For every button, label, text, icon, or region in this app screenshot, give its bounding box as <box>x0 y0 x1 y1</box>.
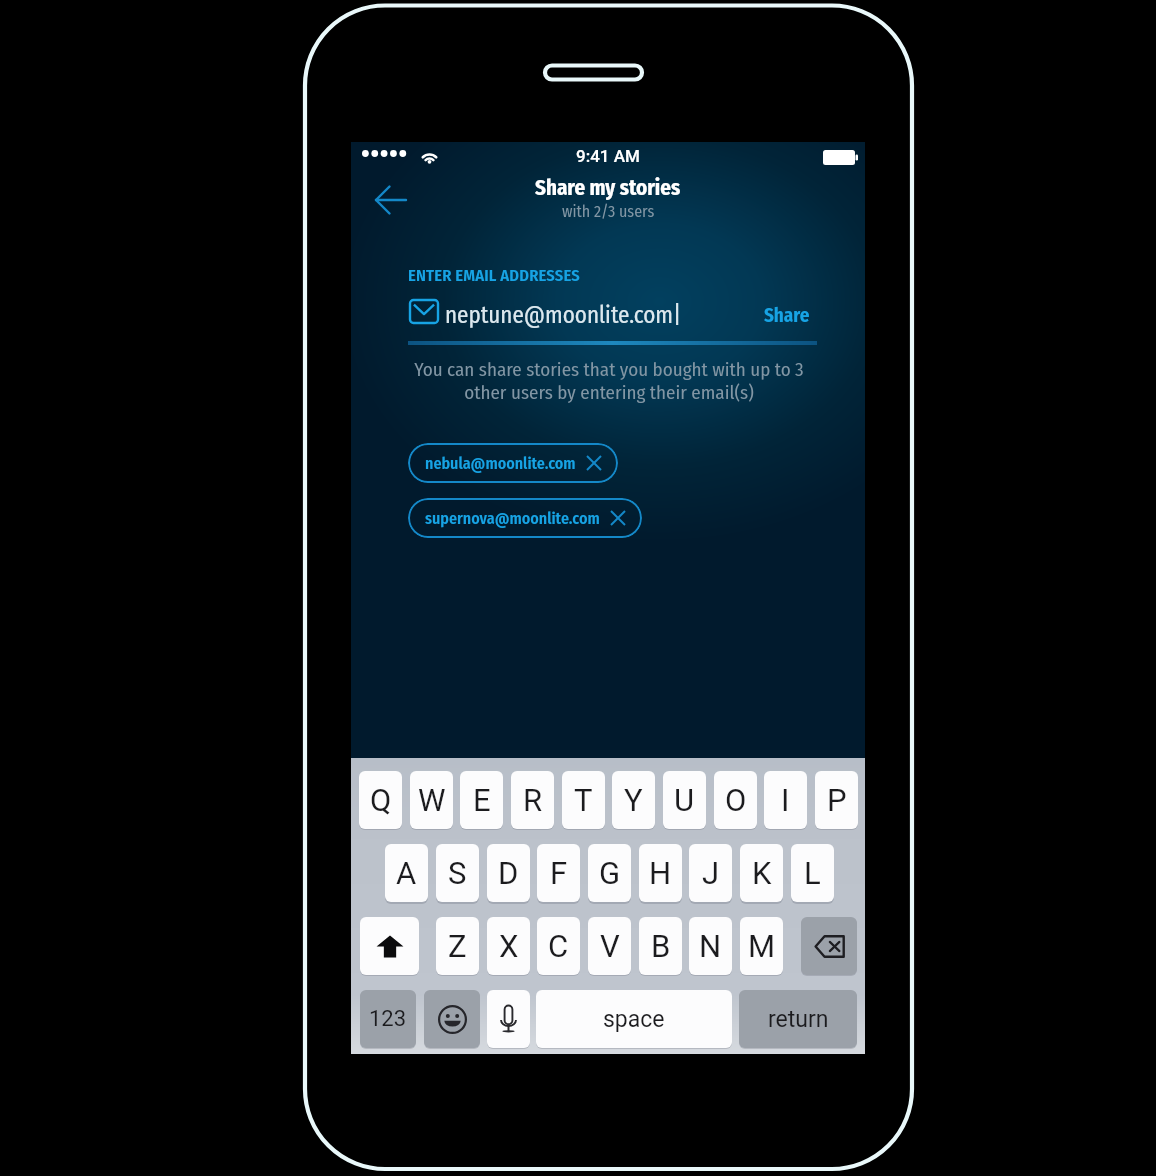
staticText: U <box>674 782 695 818</box>
button[interactable]: Shift <box>360 917 419 975</box>
staticText: nebula@moonlite.com <box>425 454 576 473</box>
staticText: You can share stories that you bought wi… <box>398 358 820 404</box>
button[interactable]: G <box>588 844 631 902</box>
button[interactable]: Back <box>364 176 412 224</box>
staticText: 9:41 AM <box>576 146 640 166</box>
staticText: A <box>396 855 417 891</box>
staticText: N <box>699 928 722 964</box>
button[interactable]: Dictation <box>487 990 530 1048</box>
button[interactable]: I <box>764 771 807 829</box>
button[interactable]: F <box>537 844 580 902</box>
button[interactable]: B <box>639 917 682 975</box>
button[interactable]: X <box>487 917 530 975</box>
button[interactable]: D <box>487 844 530 902</box>
staticText: K <box>752 855 772 891</box>
button[interactable]: A <box>385 844 428 902</box>
button[interactable]: S <box>436 844 479 902</box>
staticText: Q <box>370 782 392 818</box>
button[interactable]: Q <box>359 771 402 829</box>
button[interactable]: nebula@moonlite.com <box>408 443 618 483</box>
button[interactable]: E <box>460 771 503 829</box>
staticText: W <box>418 782 446 818</box>
button[interactable]: Return <box>739 990 857 1048</box>
button[interactable]: T <box>562 771 605 829</box>
staticText: I <box>781 782 790 818</box>
staticText: supernova@moonlite.com <box>425 509 600 528</box>
button[interactable]: Numbers <box>360 990 416 1048</box>
button[interactable]: R <box>511 771 554 829</box>
button[interactable]: supernova@moonlite.com <box>408 498 642 538</box>
button[interactable]: O <box>714 771 757 829</box>
staticText: F <box>550 855 568 891</box>
button[interactable]: Backspace <box>801 917 857 975</box>
button[interactable]: V <box>588 917 631 975</box>
staticText: 123 <box>369 1006 407 1032</box>
staticText: space <box>603 1006 665 1033</box>
staticText: D <box>498 855 519 891</box>
button[interactable]: C <box>537 917 580 975</box>
button[interactable]: J <box>689 844 732 902</box>
button[interactable]: Emoji <box>424 990 480 1048</box>
staticText: X <box>499 928 519 964</box>
staticText: neptune@moonlite.com| <box>445 301 682 329</box>
staticText: E <box>473 782 491 818</box>
staticText: return <box>768 1006 829 1033</box>
staticText: Share <box>764 304 810 327</box>
staticText: O <box>725 782 747 818</box>
button[interactable]: L <box>791 844 834 902</box>
button[interactable]: M <box>740 917 783 975</box>
staticText: ENTER EMAIL ADDRESSES <box>408 266 580 286</box>
staticText: S <box>448 855 467 891</box>
staticText: H <box>649 855 672 891</box>
button[interactable]: H <box>639 844 682 902</box>
button[interactable]: U <box>663 771 706 829</box>
button[interactable]: N <box>689 917 732 975</box>
staticText: C <box>548 928 569 964</box>
staticText: Y <box>624 782 643 818</box>
staticText: T <box>574 782 593 818</box>
button[interactable]: W <box>410 771 453 829</box>
staticText: R <box>523 782 543 818</box>
button[interactable]: Share <box>764 304 810 327</box>
staticText: V <box>600 928 620 964</box>
staticText: P <box>827 782 847 818</box>
button[interactable]: Z <box>436 917 479 975</box>
staticText: J <box>702 855 720 891</box>
button[interactable]: Space <box>536 990 732 1048</box>
staticText: L <box>804 855 821 891</box>
staticText: with 2/3 users <box>562 202 655 221</box>
button[interactable]: K <box>740 844 783 902</box>
staticText: B <box>651 928 671 964</box>
button[interactable]: Y <box>612 771 655 829</box>
staticText: G <box>599 855 621 891</box>
staticText: M <box>748 928 776 964</box>
button[interactable]: P <box>815 771 858 829</box>
staticText: Z <box>448 928 467 964</box>
staticText: Share my stories <box>535 175 681 200</box>
